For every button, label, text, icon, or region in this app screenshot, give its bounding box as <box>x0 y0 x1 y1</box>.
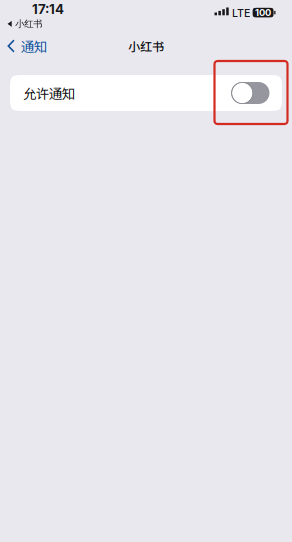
staticText: 小红书 <box>128 37 164 55</box>
button[interactable]: 小红书 <box>7 18 42 30</box>
staticText: 通知 <box>21 36 47 56</box>
staticText: 100 <box>255 7 271 18</box>
staticText: 小红书 <box>15 18 42 30</box>
button[interactable]: 允许通知 <box>10 75 282 111</box>
button[interactable]: 通知 <box>0 31 57 61</box>
staticText: 允许通知 <box>23 83 75 103</box>
staticText: 17:14 <box>32 1 64 17</box>
staticText: LTE <box>232 7 250 20</box>
